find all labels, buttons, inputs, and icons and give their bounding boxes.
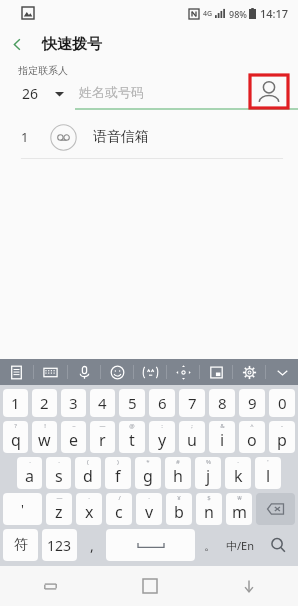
button[interactable]: 6 [149, 389, 175, 417]
button[interactable]: 3 [61, 389, 86, 417]
button[interactable]: Choose contact [250, 75, 288, 108]
button[interactable]: 26 [0, 77, 75, 110]
button[interactable]: — [90, 421, 115, 453]
button[interactable]: 7 [179, 389, 205, 417]
button[interactable]: 9 [239, 389, 265, 417]
staticText: o [247, 429, 257, 451]
button[interactable]: / [106, 493, 132, 525]
button[interactable]: 8 [209, 389, 235, 417]
button[interactable]: 1 [0, 116, 298, 158]
staticText: t [129, 429, 135, 451]
button[interactable]: · [46, 457, 71, 489]
button[interactable]: Move keyboard [167, 359, 199, 385]
button[interactable]: Split keyboard [200, 359, 232, 385]
button[interactable]: Voice input [68, 359, 100, 385]
button[interactable]: , [81, 529, 102, 561]
button[interactable]: Keyboard layout [34, 359, 67, 385]
staticText: % [206, 458, 211, 466]
button[interactable]: Recent apps [0, 566, 100, 606]
staticText: 姓名或号码 [79, 84, 144, 100]
button[interactable]: $ [196, 493, 222, 525]
staticText: 6 [158, 393, 167, 413]
staticText: p [277, 429, 287, 451]
staticText: @ [129, 422, 135, 430]
button[interactable]: Search [260, 529, 295, 561]
button[interactable]: ' [255, 457, 281, 489]
button[interactable]: @ [119, 421, 145, 453]
staticText: ' [267, 458, 269, 466]
staticText: · [58, 458, 60, 466]
staticText: ' [21, 500, 24, 518]
button[interactable]: : [149, 421, 175, 453]
button[interactable]: Settings [233, 359, 265, 385]
staticText: # [176, 458, 180, 466]
button[interactable]: ( [75, 457, 101, 489]
button[interactable]: · [136, 493, 162, 525]
button[interactable]: ! [32, 421, 57, 453]
button[interactable]: Space [106, 529, 195, 561]
staticText: ) [117, 458, 119, 466]
staticText: g [143, 465, 153, 487]
staticText: b [174, 501, 184, 523]
staticText: j [206, 465, 211, 487]
staticText: u [187, 429, 197, 451]
staticText: · [29, 458, 31, 466]
staticText: w [38, 429, 51, 451]
button[interactable]: Backspace [256, 493, 295, 525]
button[interactable]: - [269, 421, 295, 453]
staticText: z [55, 501, 63, 523]
button[interactable]: 符 [3, 529, 38, 561]
staticText: 5 [128, 393, 137, 413]
staticText: ! [44, 422, 46, 430]
staticText: 123 [47, 536, 72, 555]
button[interactable]: ^ [239, 421, 265, 453]
button[interactable]: Hide toolbar [266, 359, 298, 385]
button[interactable]: 5 [119, 389, 145, 417]
staticText: · [148, 494, 150, 502]
button[interactable]: ₩ [226, 493, 252, 525]
staticText: a [25, 465, 34, 487]
staticText: 快速拨号 [42, 35, 102, 54]
button[interactable]: * [135, 457, 161, 489]
staticText: $ [207, 494, 211, 502]
staticText: 9 [248, 393, 257, 413]
staticText: 符 [14, 536, 28, 554]
button[interactable]: 0 [269, 389, 295, 417]
button[interactable]: Back [0, 27, 34, 61]
button[interactable]: & [209, 421, 235, 453]
button[interactable]: 。 [199, 529, 220, 561]
button[interactable]: Home [100, 566, 199, 606]
button[interactable]: Emoticons [134, 359, 166, 385]
button[interactable]: · [225, 457, 251, 489]
button[interactable]: · [17, 457, 42, 489]
staticText: 98% [229, 8, 247, 20]
button[interactable]: 4 [90, 389, 115, 417]
staticText: ^ [250, 422, 254, 430]
button[interactable]: 中/En [224, 529, 256, 561]
staticText: 3 [69, 393, 78, 413]
button[interactable]: % [195, 457, 221, 489]
button[interactable]: # [165, 457, 191, 489]
staticText: ~ [72, 422, 76, 430]
button[interactable]: ~ [61, 421, 86, 453]
button[interactable]: ) [105, 457, 131, 489]
button[interactable]: ? [3, 421, 28, 453]
button[interactable]: ; [179, 421, 205, 453]
button[interactable]: ' [3, 493, 42, 525]
button[interactable]: 1 [3, 389, 28, 417]
button[interactable]: 123 [42, 529, 77, 561]
button[interactable]: Clipboard [0, 359, 33, 385]
button[interactable]: ¥ [166, 493, 192, 525]
staticText: — [56, 494, 63, 502]
staticText: d [83, 465, 93, 487]
staticText: - [281, 422, 283, 430]
staticText: q [11, 429, 21, 451]
button[interactable]: — [46, 493, 72, 525]
button[interactable]: Emoji [101, 359, 133, 385]
button[interactable]: Hide keyboard [199, 566, 298, 606]
staticText: 1 [11, 393, 20, 413]
staticText: 语音信箱 [93, 128, 149, 146]
button[interactable]: · [76, 493, 102, 525]
button[interactable]: 2 [32, 389, 57, 417]
staticText: 4G [203, 9, 213, 19]
